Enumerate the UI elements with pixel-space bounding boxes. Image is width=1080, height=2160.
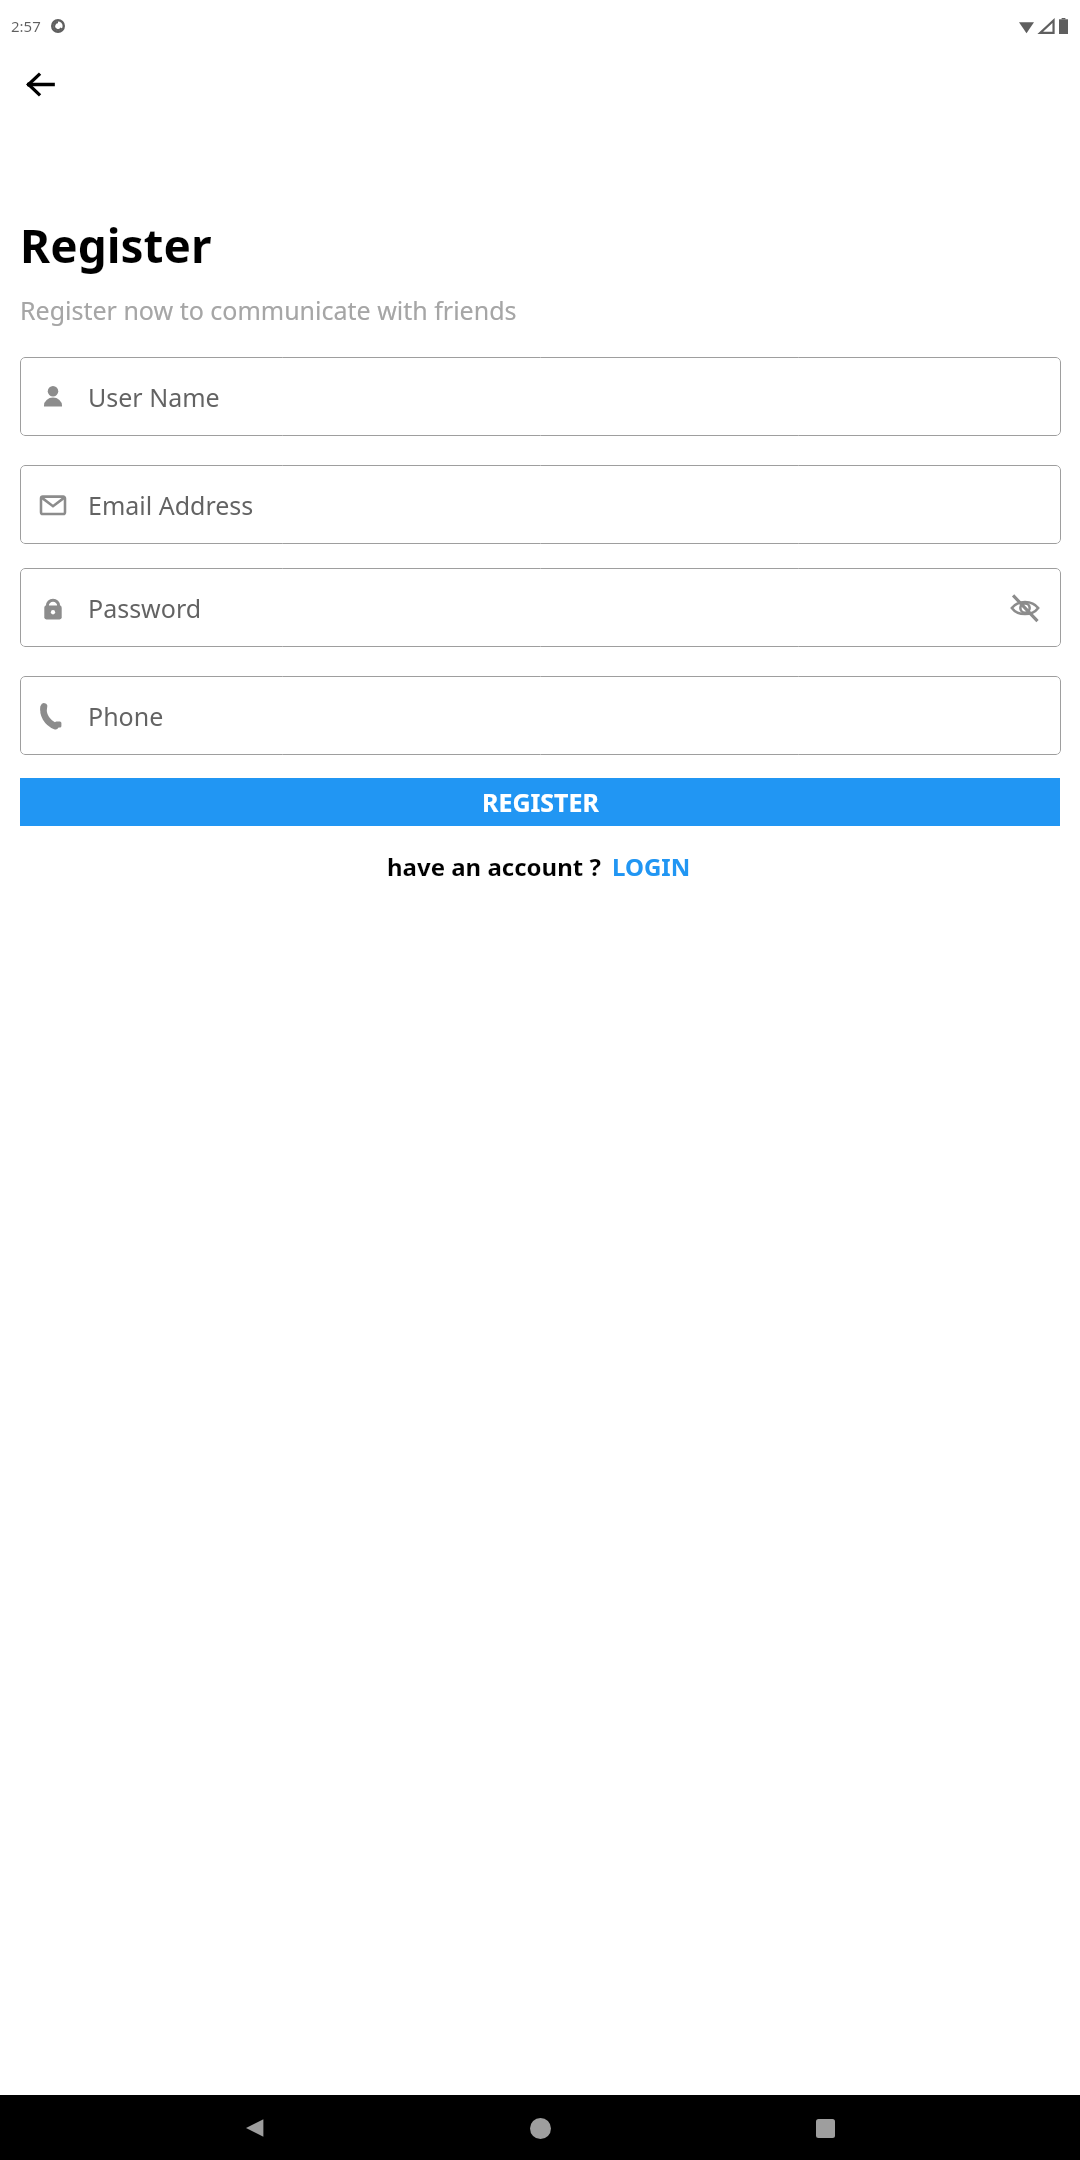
button[interactable]: Phone xyxy=(20,676,1061,755)
button[interactable]: Password xyxy=(20,568,1061,647)
staticText: LOGIN xyxy=(612,850,691,883)
button[interactable]: REGISTER xyxy=(20,778,1060,826)
button[interactable]: Email Address xyxy=(20,465,1061,544)
staticText: Phone xyxy=(88,699,164,733)
button[interactable]: Home xyxy=(510,2098,570,2158)
button[interactable]: User Name xyxy=(20,357,1061,436)
staticText: User Name xyxy=(88,380,220,414)
button[interactable]: Recent apps xyxy=(795,2098,855,2158)
button[interactable]: Back xyxy=(14,58,66,110)
button[interactable]: Show password xyxy=(1005,588,1045,628)
staticText: REGISTER xyxy=(482,785,599,819)
staticText: 2:57 xyxy=(11,16,41,36)
button[interactable]: LOGIN xyxy=(610,848,693,885)
staticText: Email Address xyxy=(88,488,254,522)
staticText: have an account ? xyxy=(387,850,601,883)
button[interactable]: Back xyxy=(225,2098,285,2158)
staticText: Register now to communicate with friends xyxy=(20,293,517,327)
staticText: Password xyxy=(88,591,202,625)
staticText: Register xyxy=(20,214,212,277)
